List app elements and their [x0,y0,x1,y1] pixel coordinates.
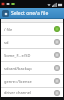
button[interactable]: driver channel [1,88,63,97]
staticText: Some_F...e/SD [4,53,52,58]
button[interactable]: sdcard/backup [1,62,63,74]
button[interactable]: genre=/license [1,75,63,87]
staticText: Select one/a file [11,10,49,17]
other: Not selected [54,90,60,96]
other: Not selected [54,65,60,71]
other: Not selected [54,39,60,45]
staticText: driver channel [4,90,52,95]
staticText: sdcard/backup [4,66,52,71]
other: Not selected [54,52,60,58]
button[interactable]: / file [1,23,63,35]
button[interactable]: Some_F...e/SD [1,49,63,61]
other: Selected [54,26,60,32]
other: Not selected [54,78,60,84]
staticText: / file [4,27,52,32]
staticText: genre=/license [4,79,52,84]
staticText: sd [4,40,52,45]
button[interactable]: sd [1,36,63,48]
other: App icon [2,10,9,17]
